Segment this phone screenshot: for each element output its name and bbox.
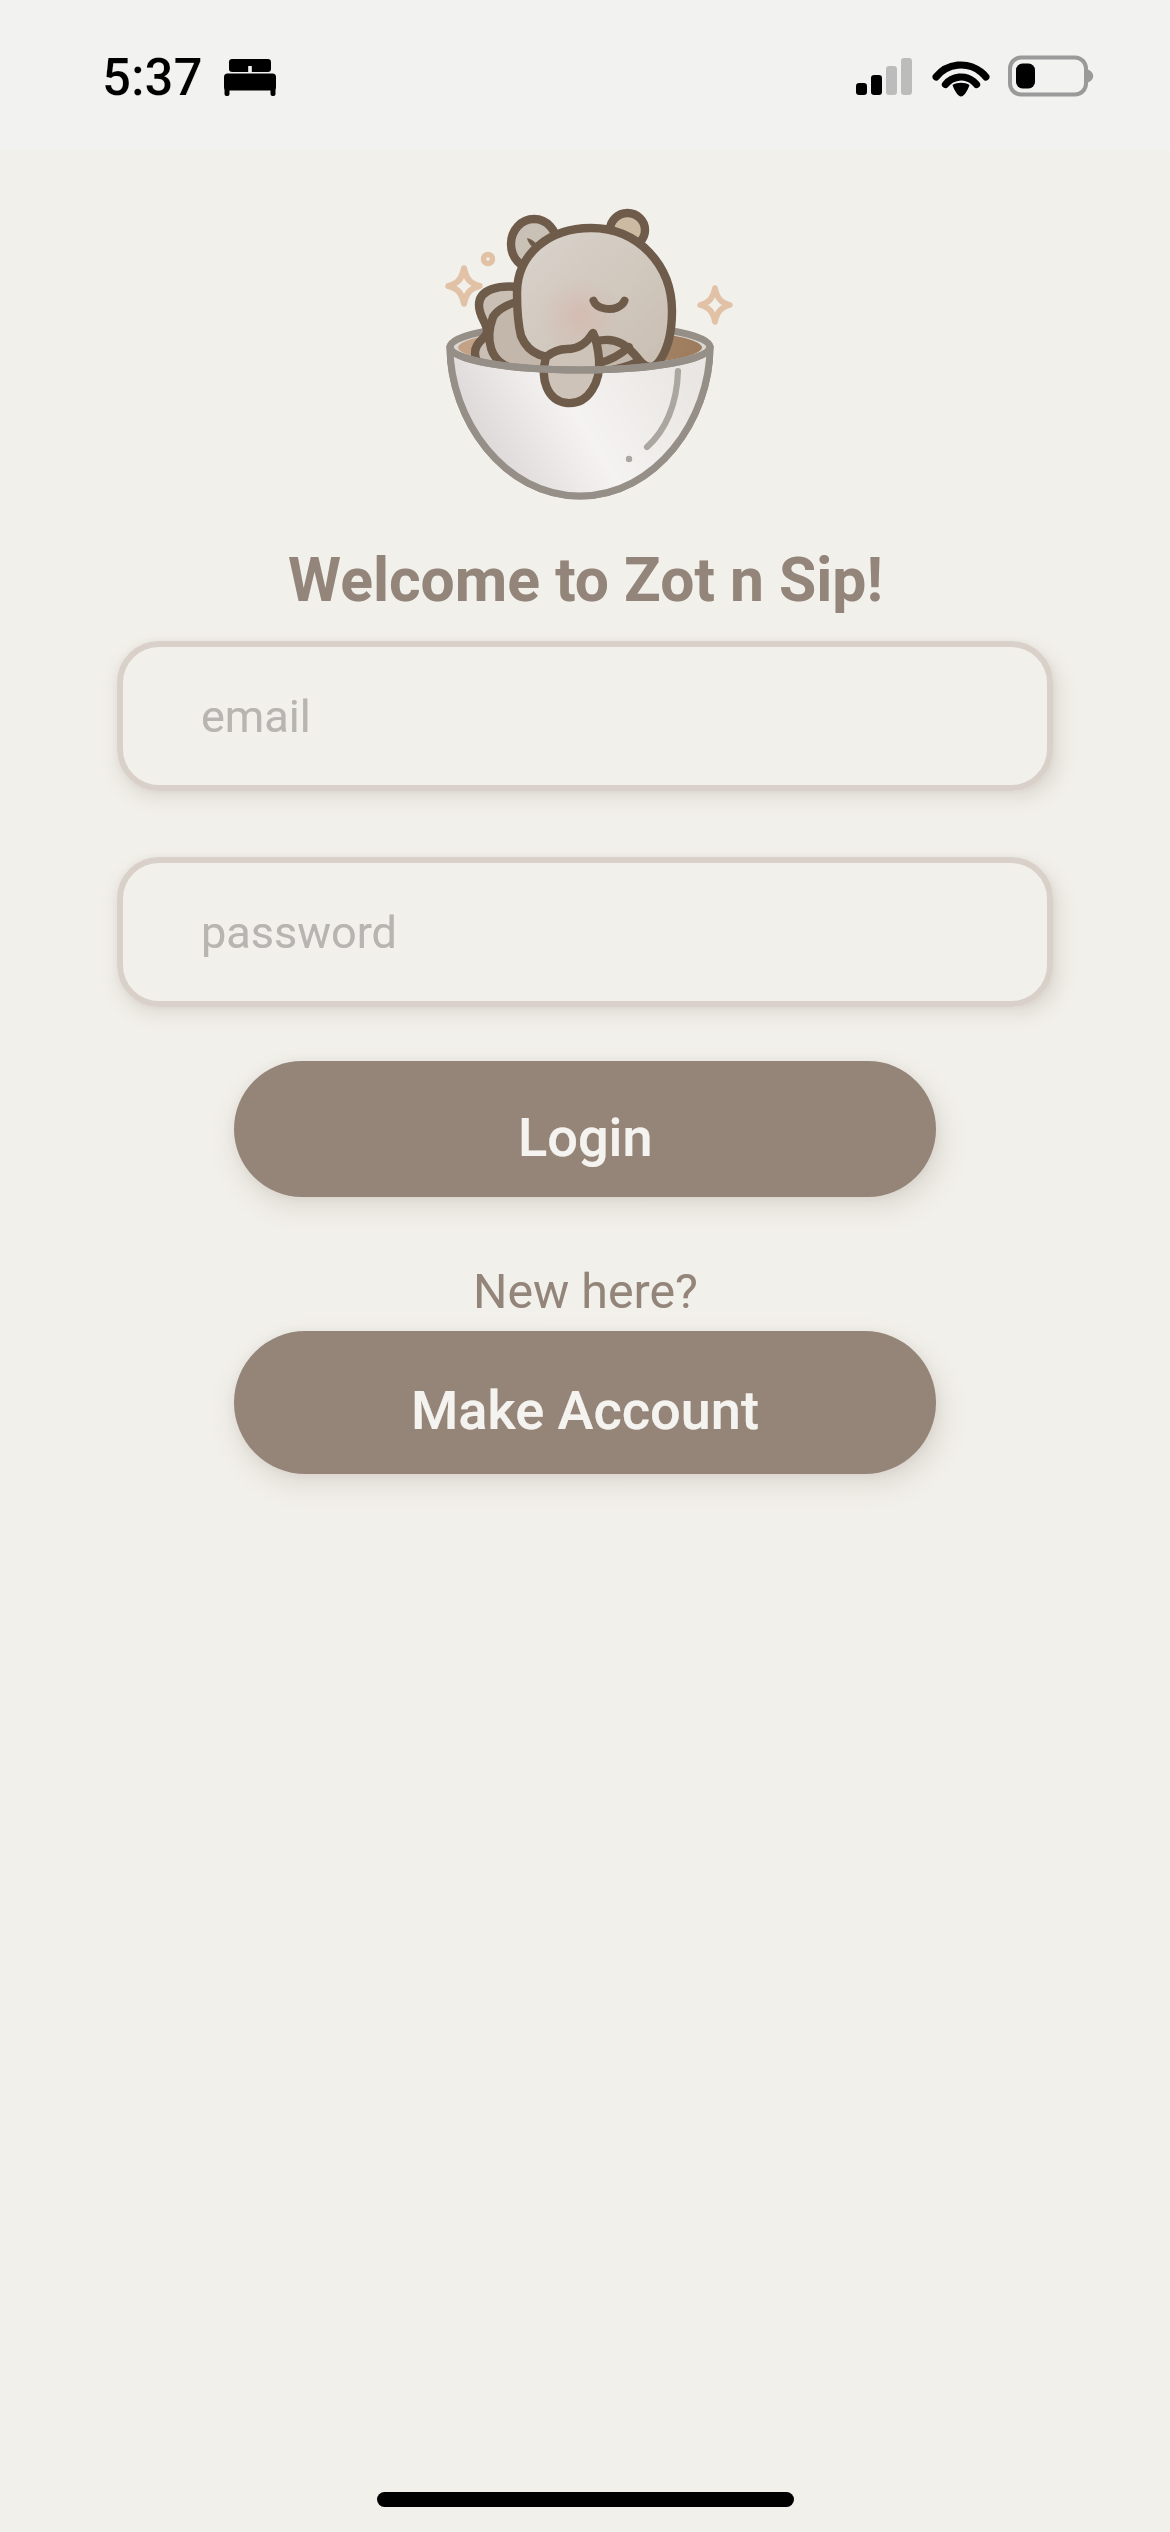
other: Sleep mode (224, 59, 276, 96)
staticText: New here? (473, 1263, 698, 1320)
button[interactable]: Make Account (234, 1331, 936, 1474)
staticText: Welcome to Zot n Sip! (288, 545, 883, 616)
staticText: Login (518, 1106, 653, 1169)
button[interactable]: Login (234, 1061, 936, 1197)
staticText: Make Account (411, 1379, 759, 1442)
staticText: password (201, 906, 397, 959)
other: Zot n Sip logo: a sleeping capybara in a… (441, 213, 741, 498)
staticText: email (201, 690, 311, 743)
button[interactable]: password (117, 857, 1053, 1007)
staticText: 5:37 (102, 48, 203, 108)
button[interactable]: email (117, 641, 1053, 791)
